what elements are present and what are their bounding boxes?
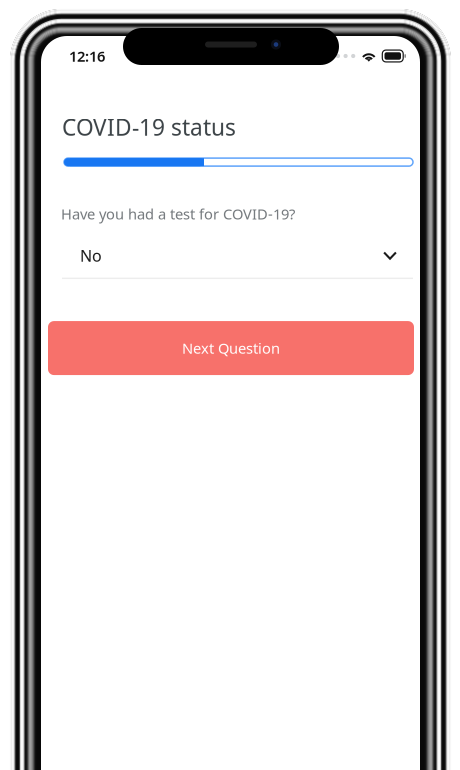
- staticText: Next Question: [182, 338, 280, 358]
- staticText: 12:16: [69, 46, 105, 66]
- staticText: COVID-19 status: [62, 112, 236, 142]
- button[interactable]: No: [41, 246, 420, 279]
- button[interactable]: Next Question: [48, 321, 414, 375]
- staticText: Have you had a test for COVID-19?: [61, 204, 295, 224]
- staticText: No: [80, 245, 102, 266]
